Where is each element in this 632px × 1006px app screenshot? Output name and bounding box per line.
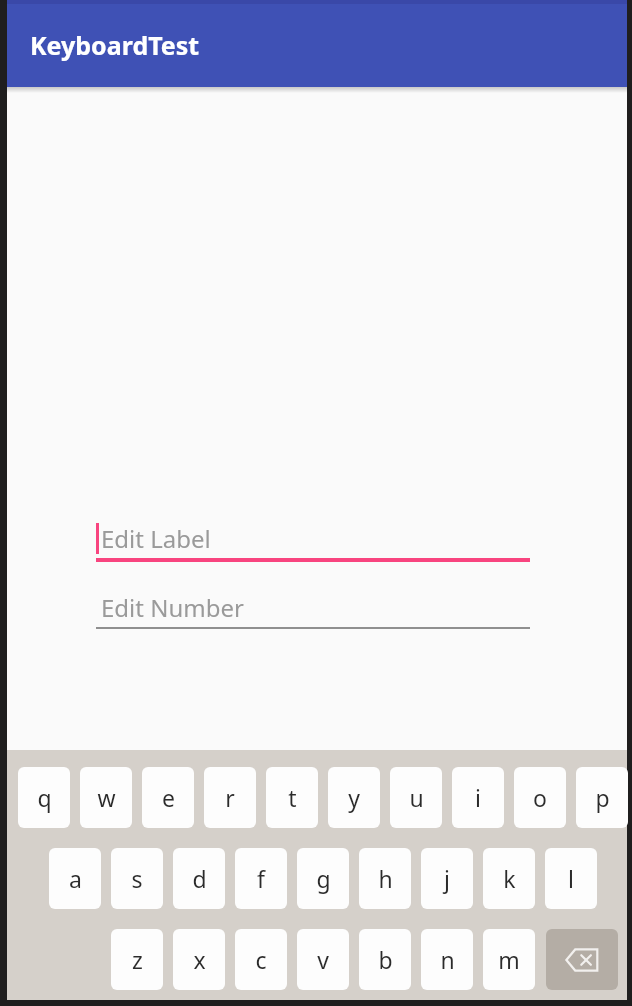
staticText: m xyxy=(498,944,520,975)
staticText: z xyxy=(132,944,143,975)
staticText: h xyxy=(378,863,393,894)
staticText: c xyxy=(255,944,267,975)
button[interactable]: g xyxy=(297,848,349,909)
staticText: w xyxy=(97,782,116,813)
staticText: r xyxy=(225,782,235,813)
staticText: d xyxy=(192,863,207,894)
staticText: k xyxy=(503,863,516,894)
staticText: o xyxy=(533,782,547,813)
button[interactable]: t xyxy=(266,767,318,828)
button[interactable]: l xyxy=(545,848,597,909)
button[interactable]: u xyxy=(390,767,442,828)
staticText: y xyxy=(348,782,360,813)
button[interactable]: o xyxy=(514,767,566,828)
staticText: t xyxy=(288,782,297,813)
staticText: p xyxy=(595,782,610,813)
staticText: b xyxy=(378,944,393,975)
button[interactable]: c xyxy=(235,929,287,990)
button[interactable]: q xyxy=(18,767,70,828)
button[interactable]: Edit Label xyxy=(7,522,627,567)
button[interactable]: m xyxy=(483,929,535,990)
button[interactable]: p xyxy=(576,767,628,828)
button[interactable]: y xyxy=(328,767,380,828)
staticText: u xyxy=(409,782,424,813)
button[interactable]: d xyxy=(173,848,225,909)
button[interactable]: s xyxy=(111,848,163,909)
staticText: s xyxy=(131,863,143,894)
button[interactable]: a xyxy=(49,848,101,909)
staticText: j xyxy=(444,863,450,894)
staticText: Edit Number xyxy=(101,591,244,624)
button[interactable]: Backspace xyxy=(546,929,618,990)
button[interactable]: x xyxy=(173,929,225,990)
button[interactable]: f xyxy=(235,848,287,909)
staticText: KeyboardTest xyxy=(30,28,200,62)
button[interactable]: z xyxy=(111,929,163,990)
staticText: e xyxy=(162,782,175,813)
staticText: g xyxy=(316,863,331,894)
staticText: n xyxy=(440,944,455,975)
staticText: Edit Label xyxy=(101,522,211,555)
staticText: q xyxy=(37,782,52,813)
button[interactable]: h xyxy=(359,848,411,909)
button[interactable]: k xyxy=(483,848,535,909)
button[interactable]: i xyxy=(452,767,504,828)
staticText: x xyxy=(193,944,206,975)
button[interactable]: n xyxy=(421,929,473,990)
button[interactable]: w xyxy=(80,767,132,828)
staticText: v xyxy=(317,944,329,975)
staticText: i xyxy=(475,782,481,813)
button[interactable]: r xyxy=(204,767,256,828)
staticText: f xyxy=(257,863,265,894)
staticText: a xyxy=(69,863,82,894)
staticText: l xyxy=(568,863,574,894)
button[interactable]: e xyxy=(142,767,194,828)
button[interactable]: Edit Number xyxy=(7,591,627,636)
button[interactable]: j xyxy=(421,848,473,909)
button[interactable]: v xyxy=(297,929,349,990)
button[interactable]: b xyxy=(359,929,411,990)
